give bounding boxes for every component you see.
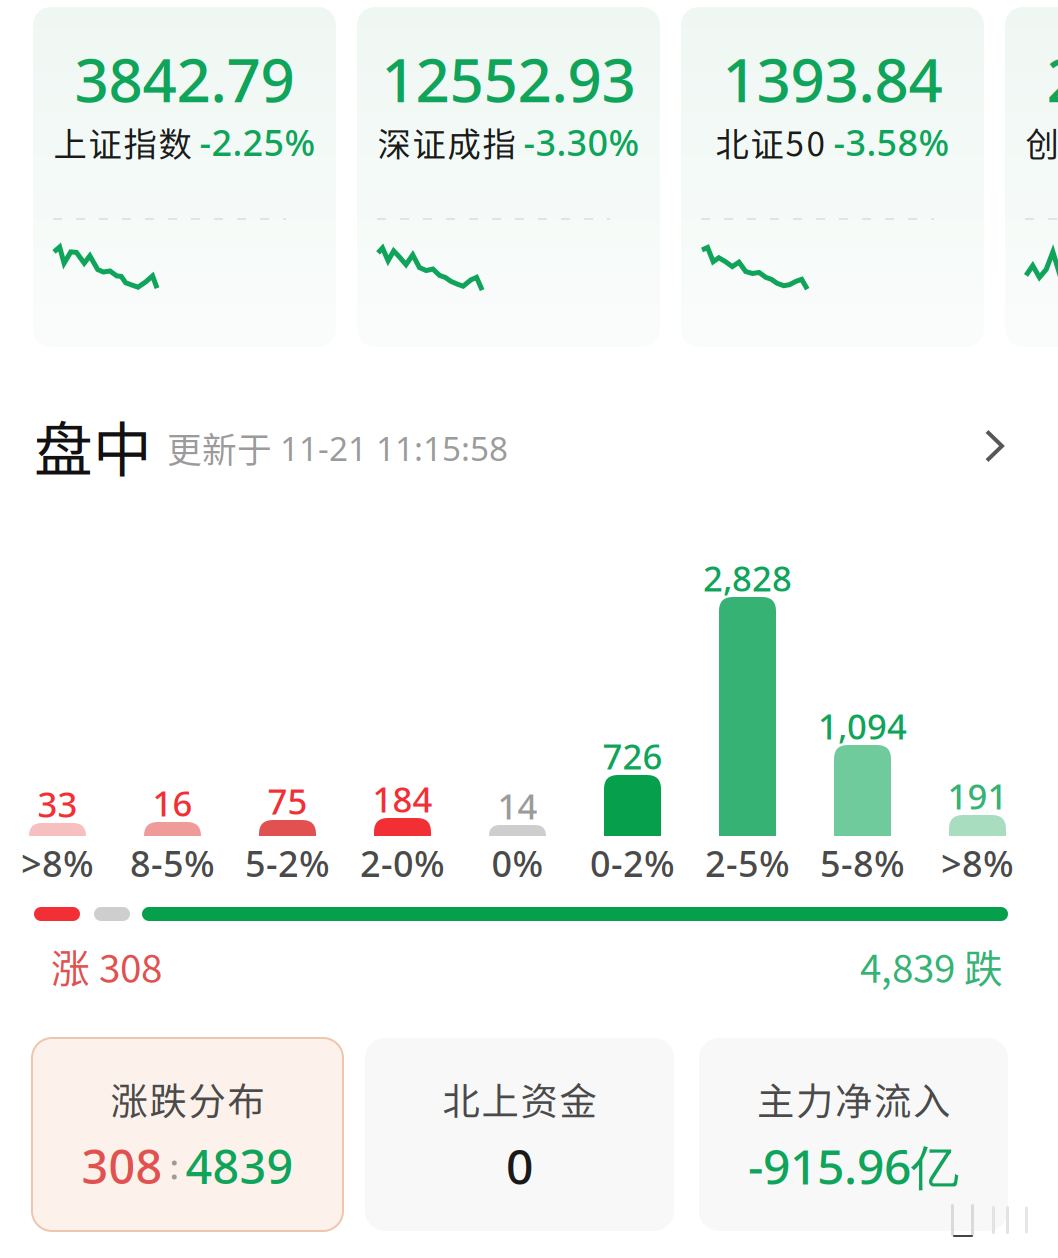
staticText: 创业板指 xyxy=(1025,118,1058,166)
staticText: 5-2% xyxy=(245,839,330,887)
button[interactable]: 2782.45 xyxy=(1005,7,1058,347)
button[interactable]: 北上资金 xyxy=(365,1038,674,1231)
staticText: 0-2% xyxy=(590,839,675,887)
staticText: >8% xyxy=(21,839,94,887)
staticText: -2.25% xyxy=(199,118,315,166)
staticText: 33 xyxy=(37,781,77,827)
staticText: 涨跌分布 xyxy=(110,1072,264,1126)
staticText: -3.30% xyxy=(523,118,639,166)
staticText: 0% xyxy=(491,839,543,887)
staticText: 12552.93 xyxy=(381,39,635,119)
staticText: 4,839 跌 xyxy=(860,938,1003,994)
staticText: 4839 xyxy=(185,1135,293,1197)
staticText: 3842.79 xyxy=(74,39,294,119)
button[interactable]: 盘中 xyxy=(34,418,1010,474)
staticText: 308 xyxy=(81,1135,162,1197)
staticText: 75 xyxy=(267,778,307,824)
staticText: 14 xyxy=(497,783,537,829)
button[interactable]: 1393.84 xyxy=(681,7,984,347)
staticText: 北证50 xyxy=(715,118,825,166)
staticText: 5-8% xyxy=(820,839,905,887)
staticText: 11-21 11:15:58 xyxy=(280,426,508,470)
button[interactable]: 主力净流入 xyxy=(699,1038,1008,1231)
button[interactable]: 3842.79 xyxy=(33,7,336,347)
staticText: 更新于 xyxy=(167,423,272,473)
staticText: 726 xyxy=(602,733,662,779)
staticText: -915.96亿 xyxy=(748,1134,959,1198)
staticText: 1,094 xyxy=(818,703,907,749)
staticText: 184 xyxy=(372,776,432,822)
staticText: 涨 308 xyxy=(51,938,162,994)
staticText: 2782.45 xyxy=(1046,39,1058,119)
staticText: 16 xyxy=(152,780,192,826)
staticText: -3.58% xyxy=(833,118,949,166)
staticText: 上证指数 xyxy=(53,118,191,166)
staticText: 2-0% xyxy=(360,839,445,887)
staticText: >8% xyxy=(941,839,1014,887)
staticText: 深证成指 xyxy=(377,118,515,166)
staticText: : xyxy=(169,1143,178,1189)
staticText: 2,828 xyxy=(703,555,792,601)
staticText: 北上资金 xyxy=(442,1072,596,1126)
button[interactable]: 涨跌分布 xyxy=(32,1038,343,1231)
staticText: 盘中 xyxy=(34,403,152,488)
staticText: 2-5% xyxy=(705,839,790,887)
staticText: 191 xyxy=(947,773,1007,819)
staticText: 1393.84 xyxy=(722,39,942,119)
button[interactable]: 12552.93 xyxy=(357,7,660,347)
staticText: 0 xyxy=(506,1134,533,1198)
staticText: 主力净流入 xyxy=(757,1072,950,1126)
staticText: 8-5% xyxy=(130,839,215,887)
